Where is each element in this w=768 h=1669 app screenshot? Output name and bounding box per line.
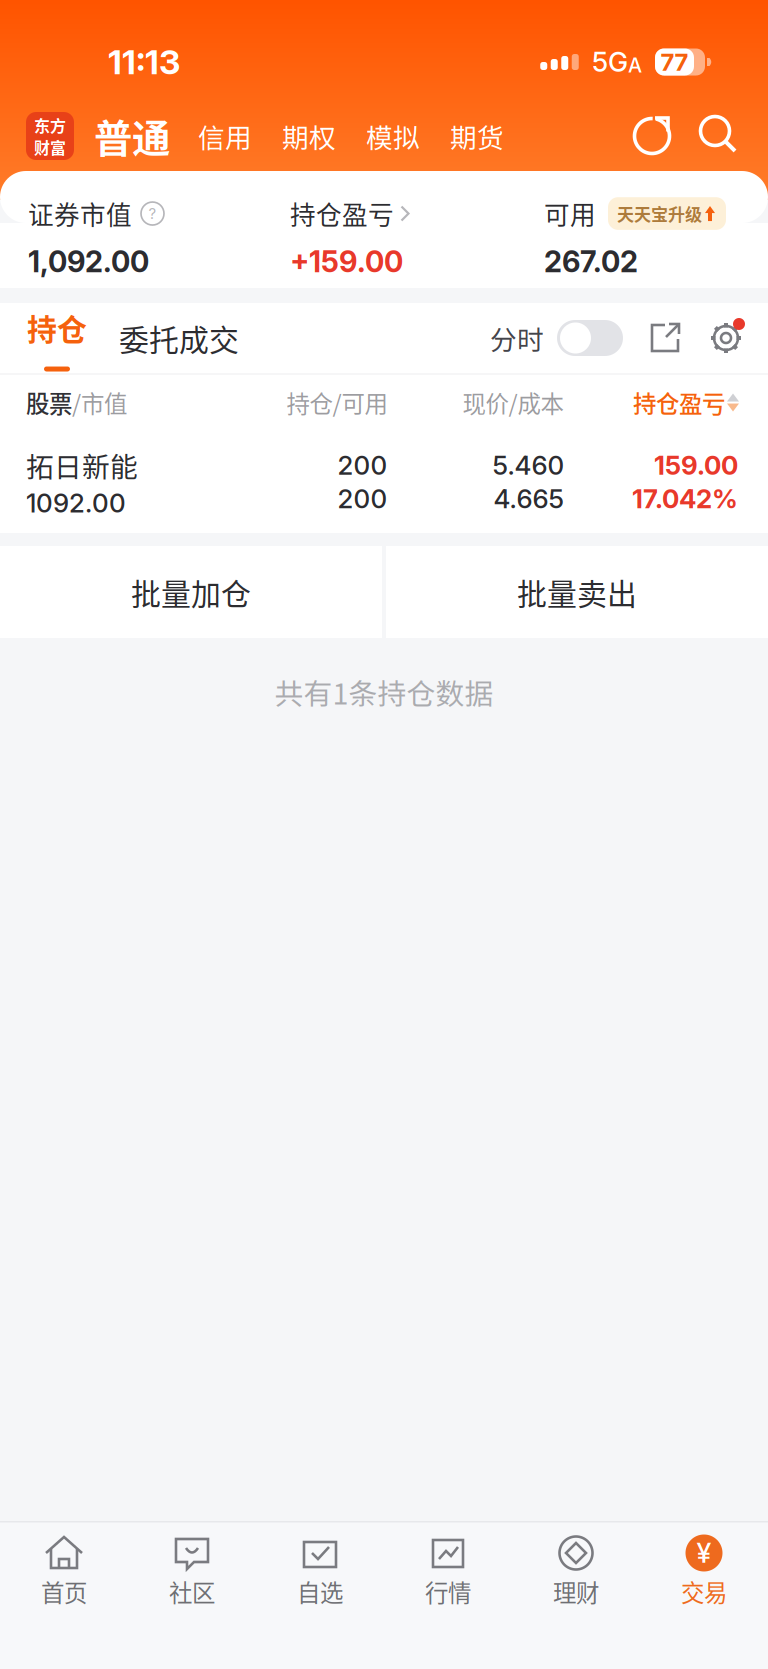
- staticText: 自选: [297, 1574, 343, 1608]
- staticText: ¥: [696, 1537, 711, 1569]
- staticText: +159.00: [290, 244, 403, 279]
- staticText: 1,092.00: [28, 244, 149, 279]
- staticText: 期权: [282, 117, 336, 155]
- staticText: 信用: [198, 117, 252, 155]
- staticText: 普通: [94, 108, 170, 164]
- button[interactable]: Refresh: [630, 113, 676, 159]
- staticText: 理财: [553, 1574, 599, 1608]
- staticText: 模拟: [366, 117, 420, 155]
- staticText: 证券市值: [28, 195, 132, 232]
- staticText: A: [628, 53, 642, 77]
- staticText: 持仓/可用: [286, 385, 387, 419]
- staticText: 5G: [592, 46, 628, 78]
- staticText: 东方: [34, 113, 66, 136]
- staticText: 社区: [169, 1574, 215, 1608]
- staticText: 4.665: [493, 483, 564, 514]
- staticText: 持仓盈亏: [290, 195, 394, 232]
- button[interactable]: 期货: [420, 107, 504, 165]
- button[interactable]: 社区: [128, 1522, 256, 1618]
- button[interactable]: Settings: [683, 302, 745, 373]
- button[interactable]: 首页: [0, 1522, 128, 1618]
- staticText: /市值: [72, 385, 127, 419]
- staticText: 现价/成本: [462, 385, 563, 419]
- staticText: 77: [660, 47, 688, 76]
- staticText: 267.02: [544, 244, 638, 279]
- button[interactable]: 普通: [74, 107, 170, 165]
- button[interactable]: 自选: [256, 1522, 384, 1618]
- staticText: 11:13: [108, 41, 180, 82]
- staticText: 交易: [681, 1574, 727, 1608]
- staticText: 天天宝升级: [617, 201, 702, 226]
- staticText: ?: [148, 204, 156, 223]
- staticText: 批量加仓: [131, 570, 251, 614]
- button[interactable]: 批量加仓: [0, 546, 382, 638]
- button[interactable]: Share: [623, 302, 683, 373]
- button[interactable]: 拓日新能: [0, 430, 768, 533]
- button[interactable]: 批量卖出: [386, 546, 768, 638]
- button[interactable]: 分时: [544, 302, 623, 373]
- staticText: 159.00: [654, 449, 738, 481]
- button[interactable]: 行情: [384, 1522, 512, 1618]
- staticText: 首页: [41, 1574, 87, 1608]
- staticText: 持仓: [27, 306, 87, 349]
- button[interactable]: 委托成交: [87, 302, 239, 373]
- staticText: 200: [337, 449, 387, 481]
- button[interactable]: 持仓: [0, 302, 87, 373]
- button[interactable]: ¥: [640, 1522, 768, 1618]
- button[interactable]: 模拟: [336, 107, 420, 165]
- staticText: 财富: [34, 135, 66, 159]
- staticText: 期货: [450, 117, 504, 155]
- staticText: 200: [337, 483, 387, 514]
- button[interactable]: 理财: [512, 1522, 640, 1618]
- button[interactable]: Search: [676, 113, 742, 159]
- staticText: 分时: [490, 319, 544, 357]
- staticText: 5.460: [492, 449, 564, 481]
- button[interactable]: 信用: [170, 107, 252, 165]
- staticText: 共有1条持仓数据: [274, 671, 493, 713]
- button[interactable]: 期权: [252, 107, 336, 165]
- staticText: 1092.00: [26, 487, 126, 519]
- staticText: 可用: [544, 195, 596, 232]
- staticText: 委托成交: [119, 316, 239, 360]
- staticText: 持仓盈亏: [633, 385, 725, 419]
- staticText: 股票: [26, 385, 72, 419]
- staticText: 17.042%: [632, 483, 738, 514]
- staticText: 拓日新能: [26, 445, 138, 485]
- staticText: 行情: [425, 1574, 471, 1608]
- staticText: 批量卖出: [517, 570, 637, 614]
